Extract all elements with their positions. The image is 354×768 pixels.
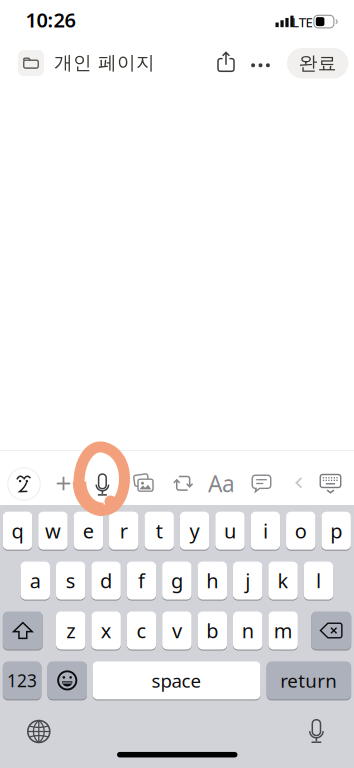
staticText: n — [242, 617, 254, 644]
button[interactable]: k — [268, 561, 298, 600]
button[interactable]: u — [215, 511, 245, 550]
button[interactable]: Text style — [206, 470, 236, 496]
button[interactable]: a — [20, 561, 50, 600]
staticText: t — [156, 517, 163, 544]
staticText: 10:26 — [25, 6, 75, 33]
button[interactable]: j — [233, 561, 262, 600]
button[interactable]: Page icon — [18, 50, 44, 76]
staticText: l — [316, 567, 321, 594]
button[interactable]: More options — [245, 55, 275, 75]
staticText: Aa — [208, 468, 235, 498]
staticText: g — [171, 567, 183, 594]
button[interactable]: o — [286, 511, 315, 550]
button[interactable]: Share — [211, 44, 241, 78]
staticText: s — [66, 567, 76, 594]
button[interactable]: 완료 — [287, 48, 348, 78]
button[interactable]: f — [127, 561, 156, 600]
button[interactable]: g — [162, 561, 192, 600]
button[interactable]: Turn into — [170, 470, 197, 496]
staticText: b — [206, 617, 218, 644]
staticText: o — [295, 517, 307, 544]
button[interactable]: x — [91, 611, 121, 650]
staticText: a — [30, 567, 41, 594]
button[interactable]: e — [74, 511, 103, 550]
button[interactable]: c — [127, 611, 156, 650]
staticText: u — [224, 517, 236, 544]
button[interactable]: p — [321, 511, 351, 550]
staticText: r — [120, 517, 128, 544]
button[interactable]: w — [38, 511, 68, 550]
button[interactable]: b — [198, 611, 227, 650]
button[interactable]: m — [268, 611, 298, 650]
staticText: m — [274, 617, 293, 644]
button[interactable]: r — [109, 511, 138, 550]
button[interactable]: z — [56, 611, 85, 650]
button[interactable]: Dictate — [89, 471, 115, 497]
button[interactable]: Dismiss keyboard — [316, 471, 344, 497]
staticText: p — [330, 517, 342, 544]
button[interactable]: q — [3, 511, 32, 550]
staticText: k — [278, 567, 289, 594]
staticText: d — [100, 567, 112, 594]
staticText: e — [83, 517, 94, 544]
button[interactable]: t — [144, 511, 174, 550]
button[interactable]: n — [233, 611, 262, 650]
button[interactable]: Next keyboard — [23, 715, 55, 747]
staticText: w — [45, 517, 61, 544]
button[interactable]: y — [180, 511, 209, 550]
staticText: f — [138, 567, 145, 594]
button[interactable]: l — [304, 561, 333, 600]
button[interactable]: i — [251, 511, 280, 550]
button[interactable]: Dictation — [300, 715, 332, 747]
button[interactable]: return — [267, 661, 351, 700]
staticText: i — [263, 517, 268, 544]
button[interactable]: d — [91, 561, 121, 600]
staticText: c — [136, 617, 146, 644]
button[interactable]: Comment — [247, 470, 275, 496]
button[interactable]: h — [198, 561, 227, 600]
button[interactable]: Shift — [3, 611, 43, 650]
button[interactable]: Emoji — [47, 661, 87, 700]
button[interactable]: s — [56, 561, 85, 600]
staticText: return — [280, 668, 337, 693]
staticText: j — [245, 567, 250, 594]
staticText: space — [152, 668, 202, 693]
staticText: 완료 — [299, 52, 337, 75]
button[interactable]: Delete — [311, 611, 351, 650]
staticText: q — [12, 517, 24, 544]
staticText: 123 — [7, 669, 37, 692]
button[interactable]: 123 — [3, 661, 41, 700]
button[interactable]: Scribble — [7, 467, 40, 500]
staticText: v — [172, 617, 182, 644]
staticText: z — [66, 617, 75, 644]
staticText: 개인 페이지 — [54, 51, 155, 74]
button[interactable]: Insert photo — [130, 470, 158, 496]
staticText: h — [206, 567, 218, 594]
staticText: LTE — [292, 13, 312, 31]
staticText: y — [190, 517, 200, 544]
button[interactable]: v — [162, 611, 192, 650]
button[interactable]: space — [93, 661, 260, 700]
staticText: x — [101, 617, 112, 644]
button[interactable]: Insert block — [50, 470, 76, 496]
